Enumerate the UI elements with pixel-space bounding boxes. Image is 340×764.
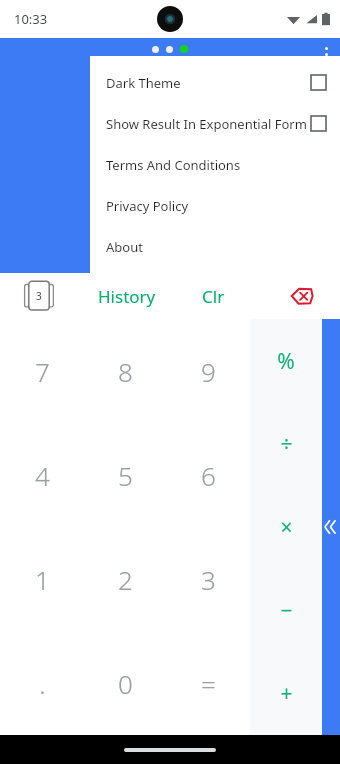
staticText: % <box>277 347 295 376</box>
staticText: × <box>280 513 293 542</box>
button[interactable]: Dark Theme <box>90 62 340 103</box>
button[interactable]: × <box>250 486 322 569</box>
staticText: 5 <box>118 458 133 493</box>
button[interactable]: ÷ <box>250 403 322 486</box>
staticText: 7 <box>35 354 50 389</box>
button[interactable]: History count <box>24 280 54 312</box>
button[interactable]: Open panel <box>322 319 340 735</box>
button[interactable]: 1 <box>0 527 84 631</box>
staticText: 9 <box>201 354 216 389</box>
staticText: 10:33 <box>14 10 48 28</box>
staticText: 4 <box>35 458 50 493</box>
staticText: 0 <box>118 666 133 701</box>
button[interactable]: 4 <box>0 423 84 527</box>
staticText: − <box>280 596 293 625</box>
button[interactable]: More options <box>318 43 334 65</box>
button[interactable]: History <box>92 281 162 312</box>
staticText: 1 <box>35 562 50 597</box>
staticText: 2 <box>118 562 133 597</box>
button[interactable]: % <box>250 319 322 403</box>
staticText: History <box>98 285 156 308</box>
button[interactable]: 8 <box>84 319 167 423</box>
button[interactable]: 9 <box>167 319 250 423</box>
button[interactable]: Clr <box>196 281 231 312</box>
staticText: 3 <box>36 289 42 303</box>
button[interactable]: 2 <box>84 527 167 631</box>
staticText: . <box>39 666 46 701</box>
staticText: Show Result In Exponential Form <box>106 115 307 133</box>
button[interactable]: 5 <box>84 423 167 527</box>
button[interactable]: + <box>250 652 322 735</box>
staticText: Privacy Policy <box>106 197 189 215</box>
staticText: ÷ <box>280 430 293 459</box>
button[interactable]: Terms And Conditions <box>90 144 340 185</box>
button[interactable]: = <box>167 631 250 735</box>
button[interactable]: Show Result In Exponential Form <box>90 103 340 144</box>
button[interactable]: About <box>90 226 340 267</box>
staticText: Clr <box>202 285 225 308</box>
staticText: + <box>280 679 293 708</box>
button[interactable]: 6 <box>167 423 250 527</box>
staticText: Dark Theme <box>106 74 181 92</box>
staticText: 3 <box>201 562 216 597</box>
button[interactable]: 7 <box>0 319 84 423</box>
staticText: Terms And Conditions <box>106 156 241 174</box>
button[interactable]: Privacy Policy <box>90 185 340 226</box>
staticText: = <box>201 666 216 701</box>
staticText: 6 <box>201 458 216 493</box>
button[interactable]: 3 <box>167 527 250 631</box>
staticText: About <box>106 238 143 256</box>
staticText: 8 <box>118 354 133 389</box>
button[interactable]: Backspace <box>288 281 318 311</box>
button[interactable]: 0 <box>84 631 167 735</box>
button[interactable]: − <box>250 569 322 652</box>
